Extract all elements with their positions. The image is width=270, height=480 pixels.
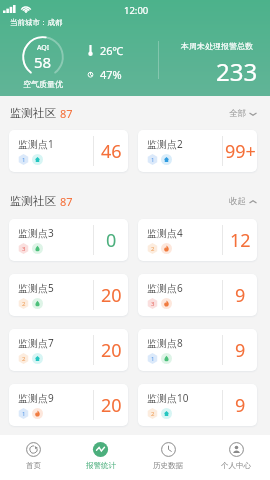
staticText: 87 [60, 194, 73, 209]
staticText: 1 [151, 355, 155, 363]
button[interactable]: 个人中心 [202, 435, 270, 480]
button[interactable]: 监测点10 [138, 384, 257, 426]
staticText: 2 [151, 410, 155, 418]
staticText: 2 [151, 245, 155, 253]
staticText: 收起 [229, 196, 246, 207]
button[interactable]: 监测点7 [9, 329, 128, 371]
staticText: 12 [230, 228, 251, 253]
staticText: 首页 [26, 461, 41, 470]
staticText: 1 [22, 410, 26, 418]
staticText: 报警统计 [86, 461, 116, 470]
staticText: 监测社区 [10, 194, 56, 208]
staticText: 历史数据 [153, 461, 183, 470]
staticText: 监测点3 [18, 226, 54, 240]
staticText: 1 [151, 156, 155, 164]
staticText: 3 [151, 300, 155, 308]
staticText: 9 [235, 283, 246, 308]
staticText: 1 [22, 156, 26, 164]
staticText: 监测点6 [147, 281, 183, 295]
staticText: 20 [101, 283, 122, 308]
staticText: 监测点5 [18, 281, 54, 295]
button[interactable]: 首页 [0, 435, 67, 480]
button[interactable]: 历史数据 [134, 435, 202, 480]
staticText: 监测点1 [18, 137, 54, 151]
staticText: 监测点10 [147, 391, 189, 405]
staticText: 当前城市：成都 [10, 18, 63, 27]
button[interactable]: 监测点6 [138, 274, 257, 316]
staticText: 0 [106, 228, 117, 253]
staticText: 12:00 [124, 4, 149, 17]
staticText: 2 [22, 355, 26, 363]
staticText: 2 [22, 300, 26, 308]
staticText: 20 [101, 393, 122, 418]
button[interactable]: 报警统计 [67, 435, 134, 480]
staticText: 全部 [229, 108, 246, 119]
button[interactable]: 监测点5 [9, 274, 128, 316]
button[interactable]: 收起 [229, 192, 257, 211]
staticText: 监测点9 [18, 391, 54, 405]
button[interactable]: 监测点4 [138, 219, 257, 261]
staticText: 本周未处理报警总数 [181, 41, 253, 51]
staticText: 9 [235, 393, 246, 418]
button[interactable]: 全部 [229, 104, 257, 123]
button[interactable]: 监测点3 [9, 219, 128, 261]
staticText: 20 [101, 338, 122, 363]
staticText: 监测社区 [10, 106, 56, 120]
staticText: 87 [60, 106, 73, 121]
staticText: 46 [101, 139, 122, 164]
staticText: 个人中心 [221, 461, 251, 470]
staticText: 3 [22, 245, 26, 253]
staticText: 监测点2 [147, 137, 183, 151]
staticText: 233 [216, 55, 258, 88]
staticText: 26℃ [100, 43, 124, 58]
staticText: 99+ [225, 139, 256, 164]
staticText: 监测点7 [18, 336, 54, 350]
button[interactable]: 监测点8 [138, 329, 257, 371]
button[interactable]: 监测点9 [9, 384, 128, 426]
staticText: 9 [235, 338, 246, 363]
staticText: 监测点8 [147, 336, 183, 350]
staticText: 58 [34, 52, 52, 72]
button[interactable]: 监测点2 [138, 130, 257, 172]
staticText: AQI [37, 43, 50, 53]
staticText: 空气质量优 [23, 79, 63, 89]
staticText: 监测点4 [147, 226, 183, 240]
staticText: 47% [100, 67, 122, 82]
button[interactable]: 监测点1 [9, 130, 128, 172]
